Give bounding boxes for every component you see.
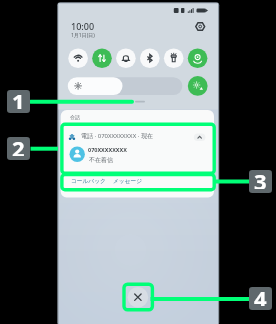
button[interactable]: コールバック: [71, 178, 106, 185]
staticText: 電話 · 070XXXXXXXX · 現在: [81, 132, 153, 140]
staticText: 10:00: [71, 20, 95, 32]
staticText: 1月1日(日): [71, 32, 95, 39]
staticText: メッセージ: [113, 178, 142, 185]
button[interactable]: Close: [128, 287, 149, 308]
staticText: 1: [12, 90, 25, 109]
staticText: 2: [12, 137, 25, 156]
staticText: 会話: [70, 114, 80, 120]
button[interactable]: メッセージ: [113, 178, 142, 185]
staticText: 070XXXXXXXX: [88, 146, 127, 153]
staticText: 3: [254, 170, 267, 189]
button[interactable]: Settings: [194, 20, 207, 33]
staticText: 4: [254, 287, 267, 306]
staticText: コールバック: [71, 178, 106, 185]
staticText: 不在着信: [89, 156, 113, 164]
